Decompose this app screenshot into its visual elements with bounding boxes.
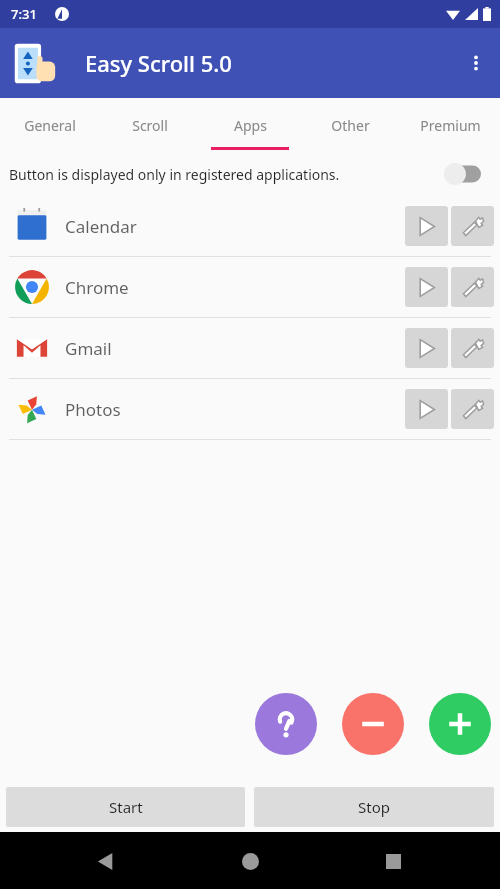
button[interactable]: Help xyxy=(255,693,317,755)
staticText: Premium xyxy=(420,116,481,135)
staticText: Scroll xyxy=(132,116,168,135)
button[interactable]: Home xyxy=(225,836,275,886)
button[interactable]: Increase xyxy=(429,693,491,755)
button[interactable]: Premium xyxy=(400,98,500,152)
button[interactable]: Calendar xyxy=(0,196,500,256)
button[interactable]: Gmail xyxy=(0,318,500,378)
button[interactable]: General xyxy=(0,98,100,152)
staticText: Easy Scroll 5.0 xyxy=(85,48,232,78)
button[interactable]: Stop xyxy=(254,787,494,827)
button[interactable]: Run Calendar xyxy=(405,206,448,246)
staticText: Stop xyxy=(358,797,390,817)
staticText: Start xyxy=(109,797,143,817)
button[interactable]: Run Chrome xyxy=(405,267,448,307)
button[interactable]: Settings for Chrome xyxy=(451,267,494,307)
button[interactable]: Settings for Calendar xyxy=(451,206,494,246)
staticText: Apps xyxy=(234,116,267,135)
staticText: Photos xyxy=(65,398,405,421)
button[interactable]: Settings for Photos xyxy=(451,389,494,429)
staticText: Calendar xyxy=(65,215,405,238)
button[interactable]: Apps xyxy=(200,98,300,152)
button[interactable]: Run Photos xyxy=(405,389,448,429)
button[interactable]: Run Gmail xyxy=(405,328,448,368)
button[interactable]: Settings for Gmail xyxy=(451,328,494,368)
staticText: Chrome xyxy=(65,276,405,299)
button[interactable]: Chrome xyxy=(0,257,500,317)
button[interactable]: Other xyxy=(300,98,400,152)
button[interactable]: More options xyxy=(452,39,500,87)
button[interactable]: Recent apps xyxy=(368,836,418,886)
staticText: 7:31 xyxy=(11,5,37,23)
button[interactable]: Back xyxy=(80,836,130,886)
staticText: General xyxy=(24,116,76,135)
staticText: Other xyxy=(331,116,370,135)
button[interactable]: Toggle registered applications only xyxy=(436,156,492,192)
staticText: Gmail xyxy=(65,337,405,360)
staticText: Button is displayed only in registered a… xyxy=(9,165,340,184)
button[interactable]: Start xyxy=(6,787,245,827)
button[interactable]: Scroll xyxy=(100,98,200,152)
button[interactable]: Photos xyxy=(0,379,500,439)
button[interactable]: Decrease xyxy=(342,693,404,755)
